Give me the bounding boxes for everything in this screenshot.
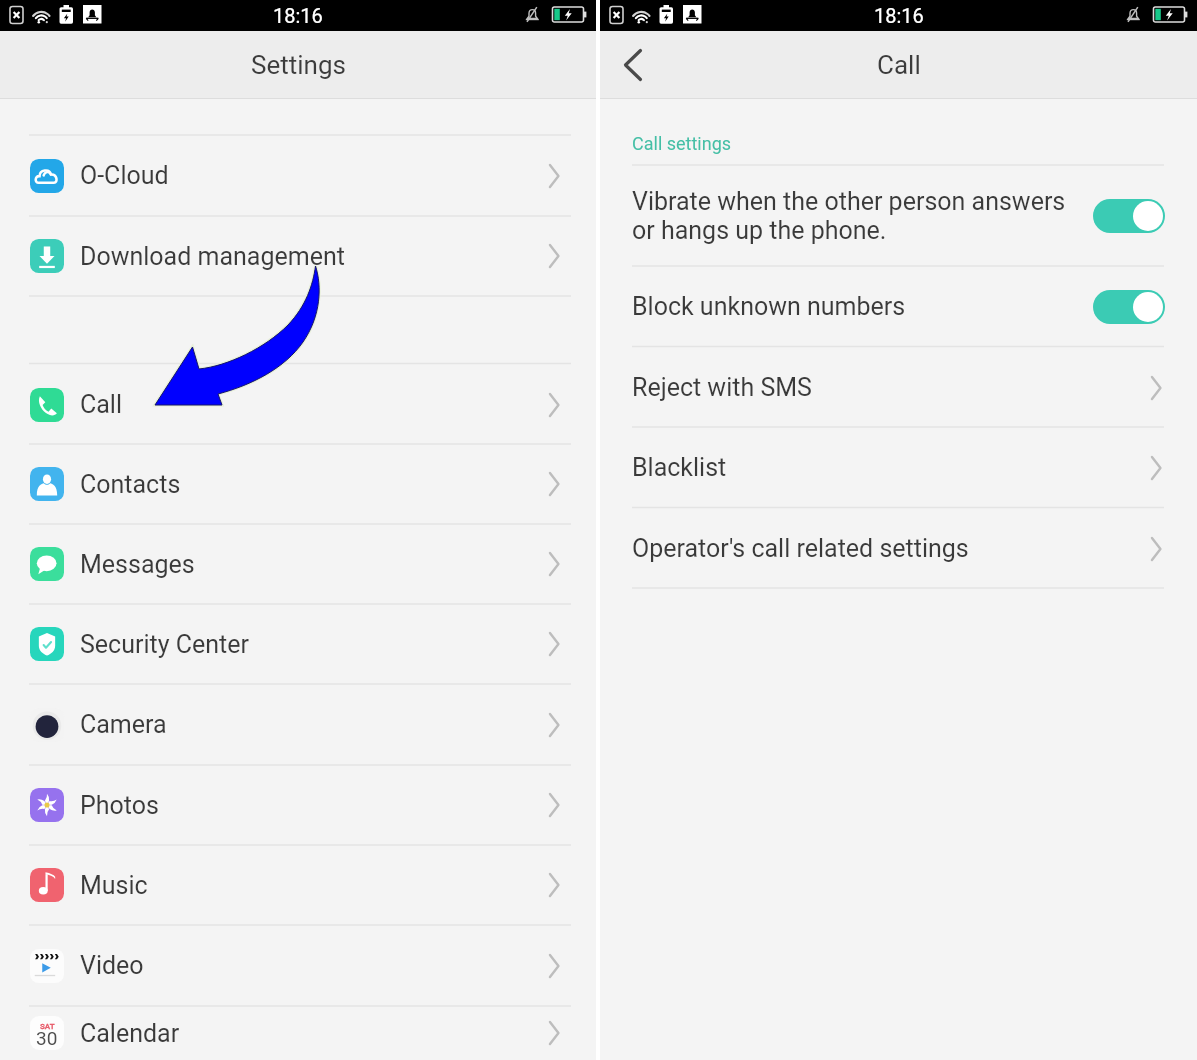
staticText: 18:16 <box>273 4 323 27</box>
button[interactable]: Block unknown numbers <box>600 266 1197 347</box>
button[interactable]: Toggle on <box>1093 199 1165 233</box>
button[interactable]: Camera <box>0 684 596 765</box>
staticText: Settings <box>251 50 346 80</box>
staticText: Security Center <box>80 630 249 659</box>
staticText: Messages <box>80 550 195 579</box>
button[interactable]: O-Cloud <box>0 135 596 216</box>
button[interactable]: Security Center <box>0 604 596 684</box>
staticText: Call <box>877 50 921 80</box>
button[interactable]: Reject with SMS <box>600 347 1197 428</box>
button[interactable]: SAT <box>0 1006 596 1060</box>
staticText: Blacklist <box>632 453 1146 482</box>
button[interactable]: Operator's call related settings <box>600 508 1197 589</box>
staticText: Call settings <box>632 133 732 154</box>
staticText: Contacts <box>80 470 181 499</box>
staticText: Photos <box>80 791 159 820</box>
button[interactable]: Contacts <box>0 444 596 524</box>
button[interactable]: Vibrate when the other person answers or… <box>600 165 1197 266</box>
staticText: O-Cloud <box>80 161 169 190</box>
staticText: Calendar <box>80 1019 180 1048</box>
button[interactable]: Photos <box>0 765 596 845</box>
staticText: Camera <box>80 710 167 739</box>
button[interactable]: Download management <box>0 216 596 296</box>
staticText: Block unknown numbers <box>632 292 1093 321</box>
staticText: Music <box>80 871 148 900</box>
button[interactable]: Toggle on <box>1093 290 1165 324</box>
staticText: Reject with SMS <box>632 373 1146 402</box>
button[interactable]: Back <box>600 31 668 98</box>
button[interactable]: Messages <box>0 524 596 604</box>
staticText: Vibrate when the other person answers or… <box>632 187 1093 245</box>
button[interactable]: Call <box>0 364 596 445</box>
staticText: 30 <box>36 1027 58 1046</box>
staticText: SAT <box>40 1022 55 1031</box>
staticText: Download management <box>80 242 345 271</box>
button[interactable]: Video <box>0 925 596 1006</box>
staticText: Call <box>80 390 123 419</box>
staticText: Video <box>80 951 144 980</box>
staticText: Operator's call related settings <box>632 534 1146 563</box>
button[interactable]: Blacklist <box>600 427 1197 508</box>
staticText: 18:16 <box>874 4 924 27</box>
button[interactable]: Music <box>0 845 596 925</box>
